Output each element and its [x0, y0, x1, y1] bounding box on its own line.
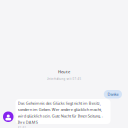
staticText: 07:51	[18, 125, 27, 128]
staticText: Unterhaltung seit 07:45	[46, 77, 81, 81]
button[interactable]: Danke	[104, 90, 122, 98]
staticText: Das Geheimnis des Glücks liegt nicht im …	[18, 101, 103, 125]
staticText: Danke	[107, 92, 118, 97]
button[interactable]: Das Geheimnis des Glücks liegt nicht im …	[15, 99, 110, 124]
staticText: Heute	[58, 69, 70, 74]
